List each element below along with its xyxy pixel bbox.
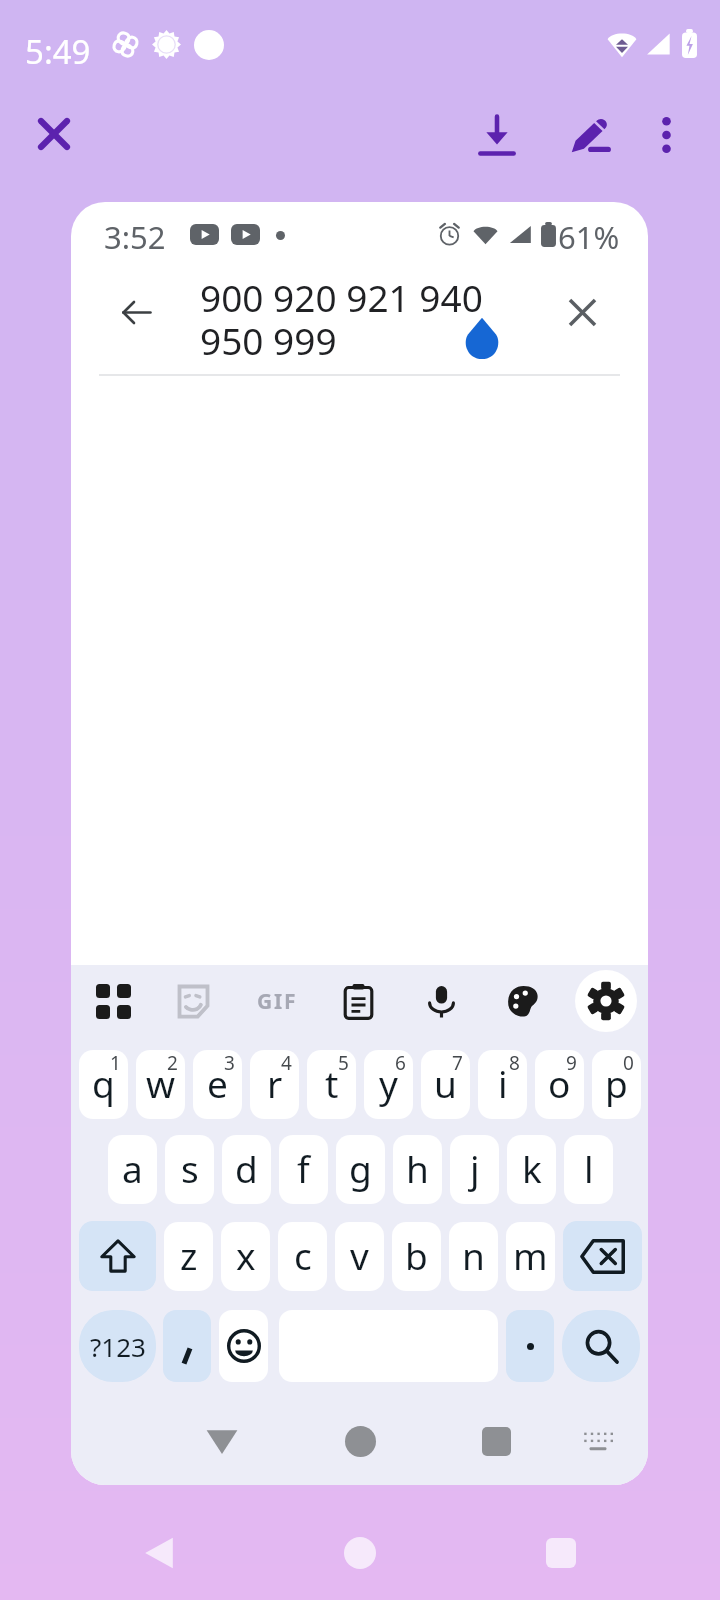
button[interactable]: Emoji — [219, 1310, 268, 1382]
button[interactable]: c — [278, 1222, 327, 1291]
button[interactable]: t — [307, 1050, 356, 1119]
staticText: p — [605, 1058, 628, 1108]
button[interactable]: Back — [124, 1518, 194, 1588]
staticText: 5:49 — [25, 29, 91, 74]
staticText: f — [297, 1143, 310, 1193]
staticText: 1 — [110, 1050, 121, 1076]
button[interactable]: j — [450, 1135, 499, 1204]
button[interactable]: p — [592, 1050, 641, 1119]
button[interactable]: Voice input — [410, 970, 472, 1032]
button[interactable]: g — [336, 1135, 385, 1204]
staticText: i — [498, 1058, 508, 1108]
button[interactable]: Settings — [575, 970, 637, 1032]
button[interactable]: Home — [325, 1406, 395, 1476]
button[interactable]: Clear — [552, 282, 612, 342]
button[interactable]: Change keyboard — [563, 1406, 633, 1476]
button[interactable]: m — [506, 1222, 555, 1291]
button[interactable]: Recents — [526, 1518, 596, 1588]
button[interactable]: r — [250, 1050, 299, 1119]
button[interactable]: l — [564, 1135, 613, 1204]
button[interactable]: i — [478, 1050, 527, 1119]
staticText: 6 — [395, 1050, 406, 1076]
button[interactable]: Themes — [492, 970, 554, 1032]
button[interactable]: s — [165, 1135, 214, 1204]
button[interactable]: More options — [626, 95, 706, 175]
button[interactable]: Edit — [550, 95, 630, 175]
staticText: r — [267, 1058, 283, 1108]
staticText: 3:52 — [104, 216, 166, 258]
button[interactable]: q — [79, 1050, 128, 1119]
staticText: 8 — [509, 1050, 520, 1076]
staticText: d — [235, 1143, 258, 1193]
button[interactable]: Search — [562, 1310, 640, 1382]
staticText: l — [584, 1143, 594, 1193]
button[interactable]: Comma — [163, 1310, 211, 1382]
staticText: ?123 — [90, 1329, 146, 1364]
staticText: z — [180, 1230, 198, 1280]
staticText: 900 920 921 940 950 999 — [200, 272, 483, 366]
staticText: 2 — [167, 1050, 178, 1076]
button[interactable]: b — [392, 1222, 441, 1291]
button[interactable]: n — [449, 1222, 498, 1291]
staticText: 7 — [452, 1050, 463, 1076]
staticText: m — [513, 1230, 548, 1280]
button[interactable]: Close — [14, 94, 94, 174]
button[interactable]: u — [421, 1050, 470, 1119]
staticText: n — [462, 1230, 485, 1280]
button[interactable]: v — [335, 1222, 384, 1291]
staticText: g — [349, 1143, 372, 1193]
button[interactable]: d — [222, 1135, 271, 1204]
staticText: 5 — [338, 1050, 349, 1076]
staticText: w — [146, 1058, 176, 1108]
staticText: b — [405, 1230, 428, 1280]
button[interactable]: Apps — [82, 970, 144, 1032]
button[interactable]: o — [535, 1050, 584, 1119]
button[interactable]: Hide keyboard — [187, 1406, 257, 1476]
staticText: q — [92, 1058, 115, 1108]
button[interactable]: Save — [457, 95, 537, 175]
staticText: GIF — [257, 987, 298, 1016]
button[interactable]: k — [507, 1135, 556, 1204]
button[interactable]: Recents — [461, 1406, 531, 1476]
button[interactable]: Backspace — [563, 1221, 642, 1291]
staticText: 9 — [566, 1050, 577, 1076]
staticText: x — [236, 1230, 256, 1280]
staticText: h — [406, 1143, 429, 1193]
button[interactable]: z — [164, 1222, 213, 1291]
staticText: c — [294, 1230, 312, 1280]
staticText: v — [350, 1230, 369, 1280]
button[interactable]: Stickers — [162, 970, 224, 1032]
button[interactable]: Back — [106, 282, 166, 342]
button[interactable]: e — [193, 1050, 242, 1119]
button[interactable]: x — [221, 1222, 270, 1291]
staticText: 61% — [558, 216, 620, 258]
staticText: 4 — [281, 1050, 292, 1076]
staticText: t — [325, 1058, 339, 1108]
staticText: 3 — [224, 1050, 235, 1076]
staticText: y — [379, 1058, 398, 1108]
button[interactable]: y — [364, 1050, 413, 1119]
staticText: j — [470, 1143, 480, 1193]
button[interactable]: Shift — [79, 1221, 156, 1291]
button[interactable]: Period — [506, 1310, 554, 1382]
button[interactable]: Symbols — [79, 1310, 156, 1382]
staticText: e — [207, 1058, 228, 1108]
button[interactable]: GIF — [246, 970, 308, 1032]
button[interactable]: h — [393, 1135, 442, 1204]
staticText: s — [181, 1143, 199, 1193]
staticText: 0 — [623, 1050, 634, 1076]
staticText: u — [434, 1058, 457, 1108]
button[interactable]: Home — [325, 1518, 395, 1588]
button[interactable]: w — [136, 1050, 185, 1119]
staticText: k — [522, 1143, 542, 1193]
button[interactable]: f — [279, 1135, 328, 1204]
button[interactable]: Clipboard — [327, 970, 389, 1032]
button[interactable]: a — [108, 1135, 157, 1204]
staticText: o — [548, 1058, 571, 1108]
staticText: a — [122, 1143, 143, 1193]
